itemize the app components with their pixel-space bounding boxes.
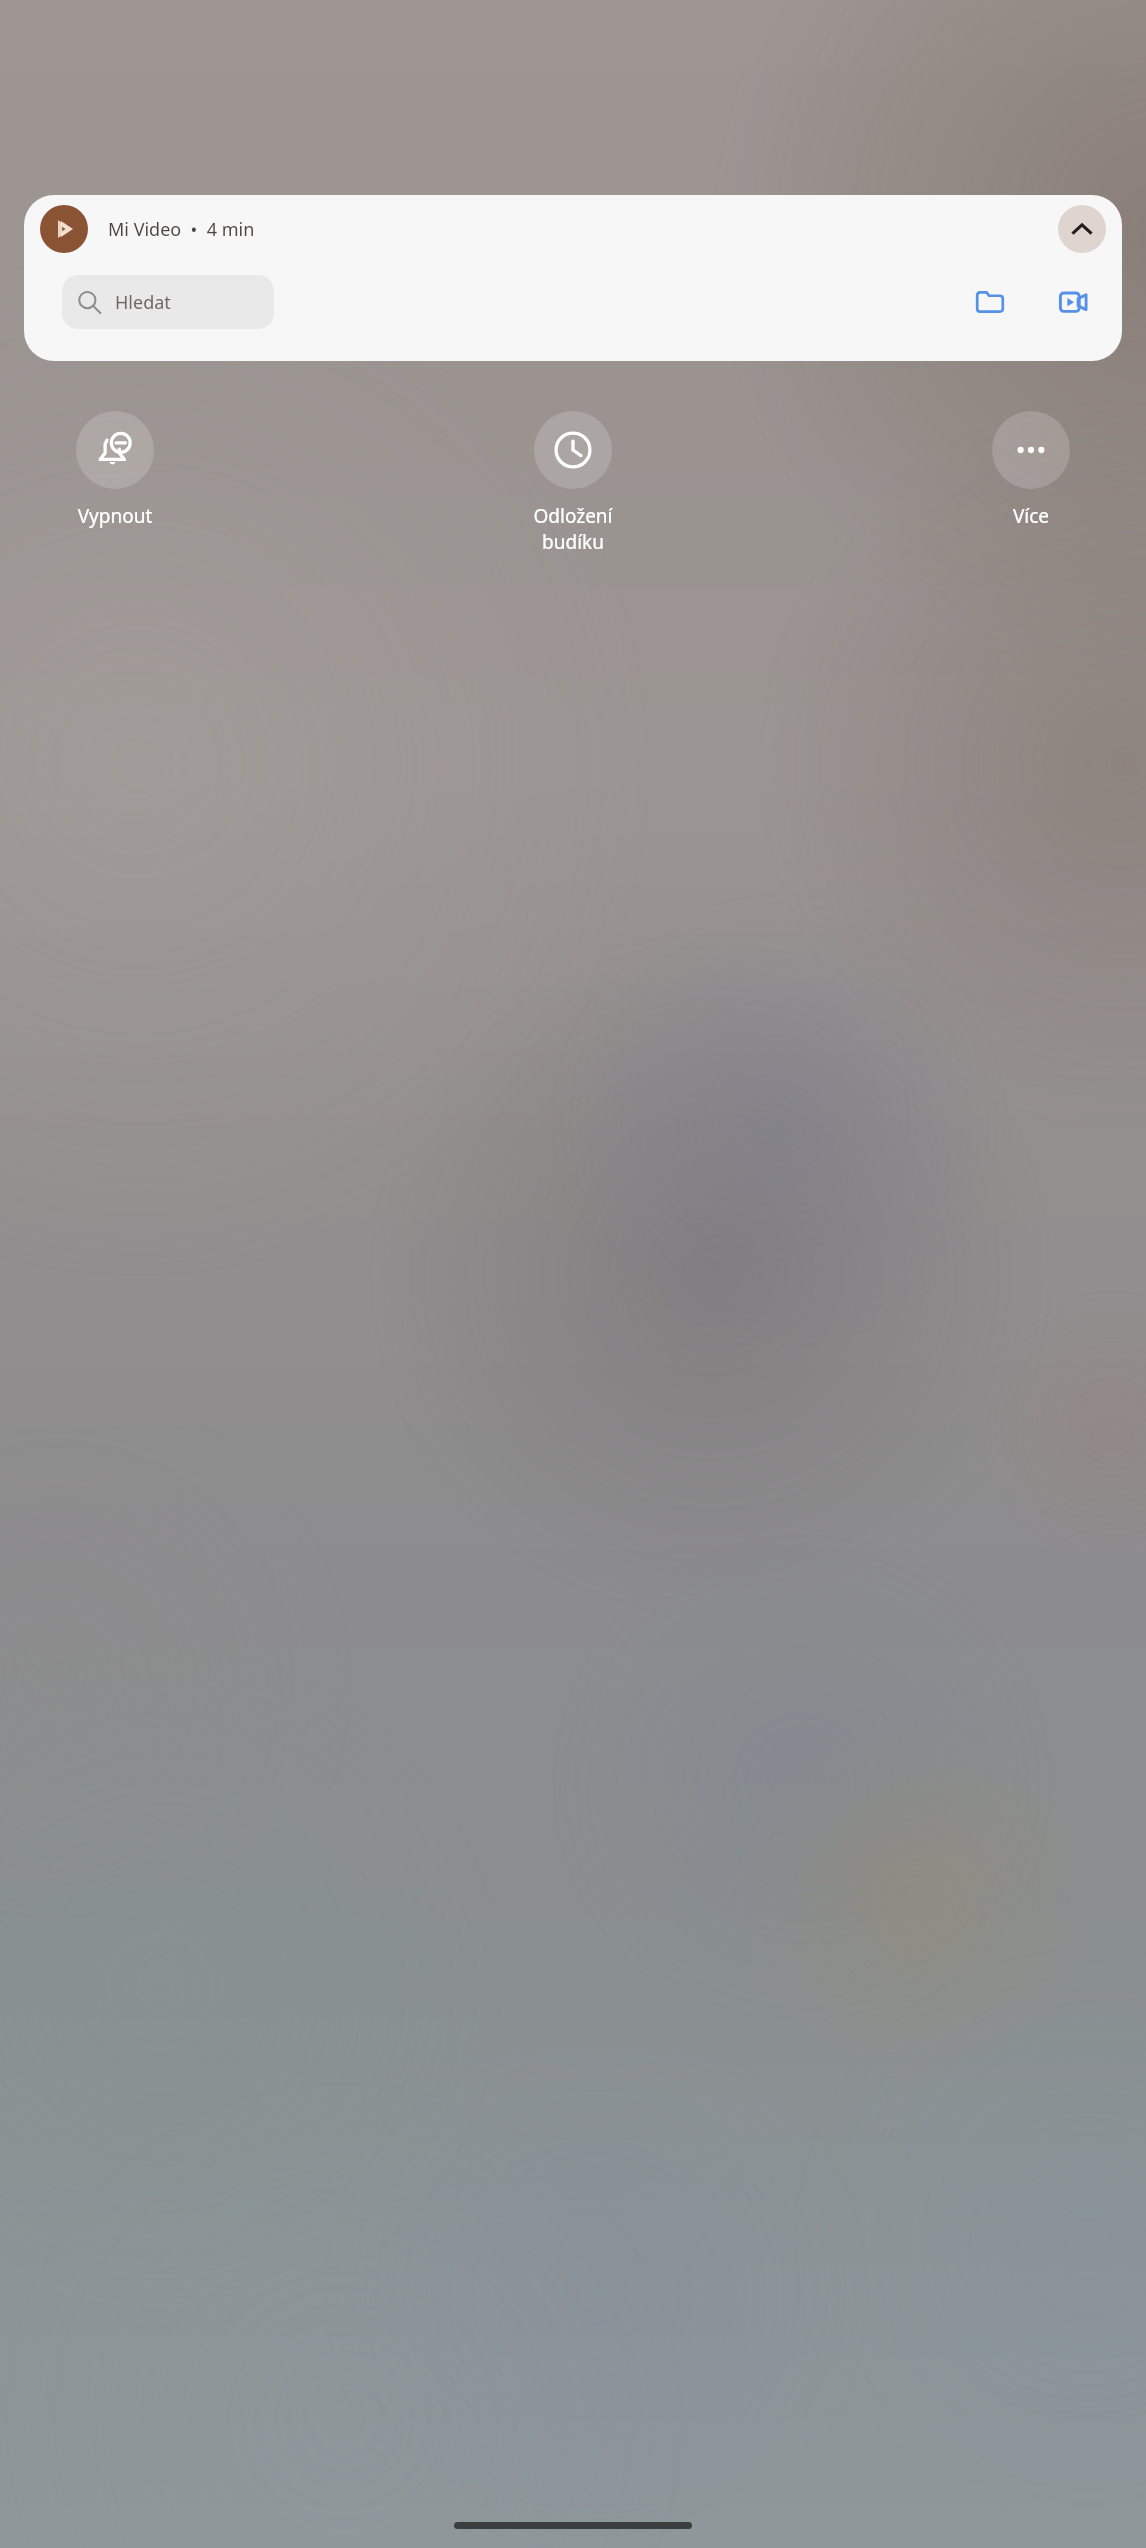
- button[interactable]: Expand notification: [1058, 205, 1106, 253]
- button[interactable]: Vypnout: [40, 411, 190, 529]
- staticText: Více: [956, 503, 1106, 529]
- staticText: Vypnout: [40, 503, 190, 529]
- button[interactable]: Více: [956, 411, 1106, 529]
- button[interactable]: Hledat: [62, 275, 274, 329]
- button[interactable]: Video: [1048, 276, 1100, 328]
- staticText: Hledat: [115, 290, 171, 315]
- staticText: Mi Video • 4 min: [108, 217, 255, 242]
- button[interactable]: Mi Video • 4 min: [24, 195, 1122, 361]
- button[interactable]: Odložení budíku: [498, 411, 648, 554]
- button[interactable]: Folder: [964, 276, 1016, 328]
- staticText: Odložení budíku: [498, 503, 648, 554]
